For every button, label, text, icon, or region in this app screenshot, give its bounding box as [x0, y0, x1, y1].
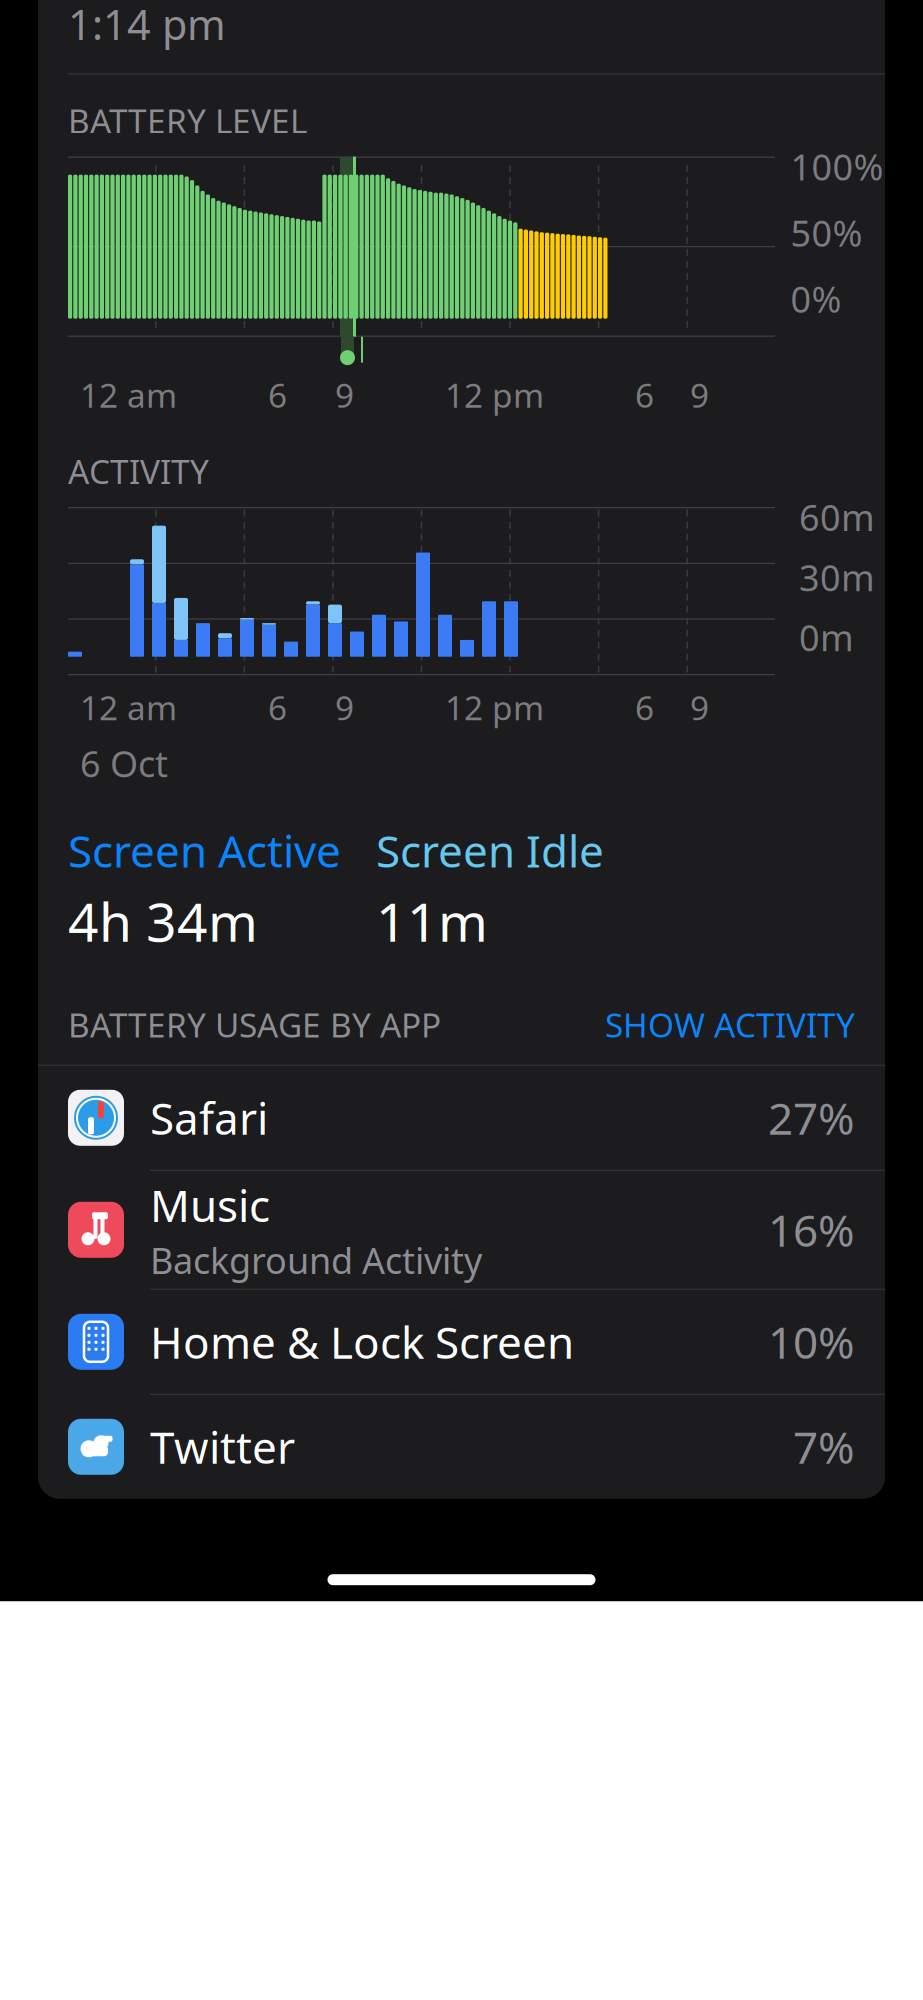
staticText: 16% — [768, 1201, 855, 1259]
staticText: Background Activity — [150, 1236, 482, 1284]
staticText: 1:14 pm — [68, 0, 226, 51]
staticText: 60m — [799, 493, 875, 541]
staticText: 12 pm — [445, 373, 544, 417]
staticText: 12 am — [80, 373, 177, 417]
staticText: Home & Lock Screen — [150, 1313, 574, 1371]
staticText: 6 — [635, 373, 654, 417]
staticText: Safari — [150, 1089, 268, 1147]
staticText: 30m — [799, 553, 875, 601]
staticText: SHOW ACTIVITY — [605, 1002, 855, 1047]
staticText: 7% — [793, 1418, 855, 1476]
button[interactable]: Twitter — [38, 1395, 885, 1499]
staticText: 6 Oct — [80, 739, 168, 787]
staticText: 12 am — [80, 685, 177, 729]
staticText: 11m — [376, 886, 488, 956]
button[interactable]: Safari — [38, 1066, 885, 1170]
staticText: Twitter — [150, 1418, 295, 1476]
staticText: 0m — [799, 613, 854, 661]
staticText: BATTERY USAGE BY APP — [68, 1002, 441, 1047]
staticText: 6 — [635, 685, 654, 729]
staticText: BATTERY LEVEL — [68, 98, 307, 143]
staticText: 9 — [335, 685, 354, 729]
staticText: 100% — [790, 143, 883, 190]
staticText: 9 — [335, 373, 354, 417]
staticText: 10% — [768, 1313, 855, 1371]
staticText: ACTIVITY — [68, 449, 209, 493]
button[interactable]: SHOW ACTIVITY — [605, 1002, 855, 1047]
staticText: 50% — [790, 209, 862, 257]
staticText: 0% — [790, 275, 841, 323]
staticText: 6 — [268, 685, 287, 729]
staticText: Music — [150, 1176, 270, 1234]
staticText: 6 — [268, 373, 287, 417]
staticText: 12 pm — [445, 685, 544, 729]
button[interactable]: Music — [38, 1171, 885, 1289]
staticText: Screen Active — [68, 821, 341, 880]
staticText: 9 — [690, 373, 709, 417]
staticText: 4h 34m — [68, 886, 258, 956]
staticText: Screen Idle — [376, 821, 604, 880]
staticText: 27% — [768, 1089, 855, 1147]
button[interactable]: Home & Lock Screen — [38, 1290, 885, 1394]
staticText: 9 — [690, 685, 709, 729]
